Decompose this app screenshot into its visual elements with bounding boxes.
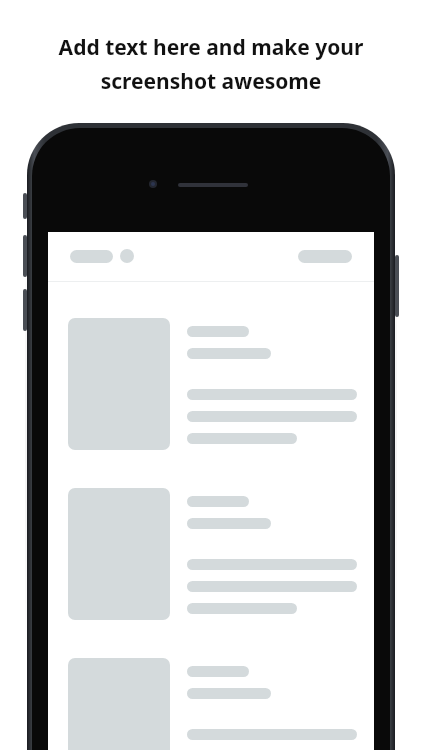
button[interactable] — [48, 488, 374, 620]
staticText: Add text here and make your screenshot a… — [24, 33, 398, 95]
button[interactable]: Action — [298, 250, 352, 263]
button[interactable]: Profile — [120, 249, 134, 263]
button[interactable] — [48, 318, 374, 450]
button[interactable] — [48, 658, 374, 750]
button[interactable]: Menu — [70, 250, 113, 263]
